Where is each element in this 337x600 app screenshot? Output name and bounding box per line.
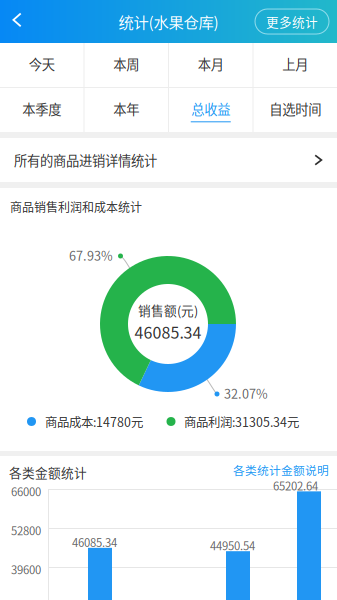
staticText: 67.93%	[69, 246, 113, 264]
button[interactable]: 更多统计	[0, 0, 74, 25]
staticText: 所有的商品进销详情统计	[14, 150, 157, 170]
staticText: 本年	[113, 99, 139, 118]
staticText: 上月	[282, 54, 308, 73]
staticText: 39600	[11, 561, 41, 577]
staticText: 各类统计金额说明	[233, 461, 329, 478]
button[interactable]: 本季度	[0, 88, 83, 132]
button[interactable]: 各类统计金额说明	[0, 456, 100, 470]
button[interactable]: 本周	[84, 43, 168, 87]
button[interactable]: 今天	[0, 43, 83, 87]
staticText: 66000	[11, 483, 41, 499]
staticText: 各类金额统计	[9, 463, 87, 481]
staticText: 46085.34	[72, 534, 117, 550]
staticText: 本周	[113, 54, 139, 73]
staticText: 统计(水果仓库)	[118, 10, 218, 33]
staticText: 今天	[29, 54, 55, 73]
button[interactable]: 总收益	[169, 88, 252, 132]
button[interactable]: 本年	[84, 88, 168, 132]
button[interactable]: 上月	[253, 43, 337, 87]
staticText: 商品销售利润和成本统计	[10, 198, 142, 215]
staticText: 自选时间	[269, 99, 321, 118]
staticText: 商品利润:31305.34元	[184, 412, 299, 430]
staticText: 商品成本:14780元	[45, 412, 143, 430]
staticText: 总收益	[191, 99, 230, 118]
staticText: 65202.64	[273, 477, 318, 494]
button[interactable]: 本月	[169, 43, 252, 87]
staticText: 本季度	[22, 99, 61, 118]
staticText: 52800	[11, 522, 41, 538]
staticText: 44950.54	[210, 537, 255, 554]
button[interactable]: 自选时间	[253, 88, 337, 132]
button[interactable]: 所有的商品进销详情统计	[0, 138, 337, 182]
staticText: 46085.34	[134, 320, 201, 343]
staticText: 本月	[198, 54, 224, 73]
button[interactable]: Back	[0, 0, 36, 43]
staticText: 更多统计	[266, 12, 318, 31]
staticText: 销售额(元)	[138, 301, 198, 319]
staticText: 32.07%	[224, 384, 268, 402]
